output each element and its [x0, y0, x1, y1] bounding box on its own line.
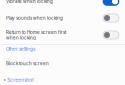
staticText: Screenshot [7, 77, 33, 83]
staticText: Other settings [6, 46, 35, 52]
button[interactable]: Play sounds when locking [0, 11, 125, 25]
staticText: Vibrate when locking [6, 0, 53, 4]
staticText: Return to Home screen first when locking [6, 29, 66, 40]
staticText: Block touch screen [6, 61, 49, 66]
button[interactable]: Return to Home screen first when locking [0, 27, 125, 43]
staticText: Play sounds when locking [6, 15, 63, 21]
button[interactable]: Block touch screen [0, 57, 125, 70]
button[interactable]: Vibrate when locking [0, 0, 125, 7]
